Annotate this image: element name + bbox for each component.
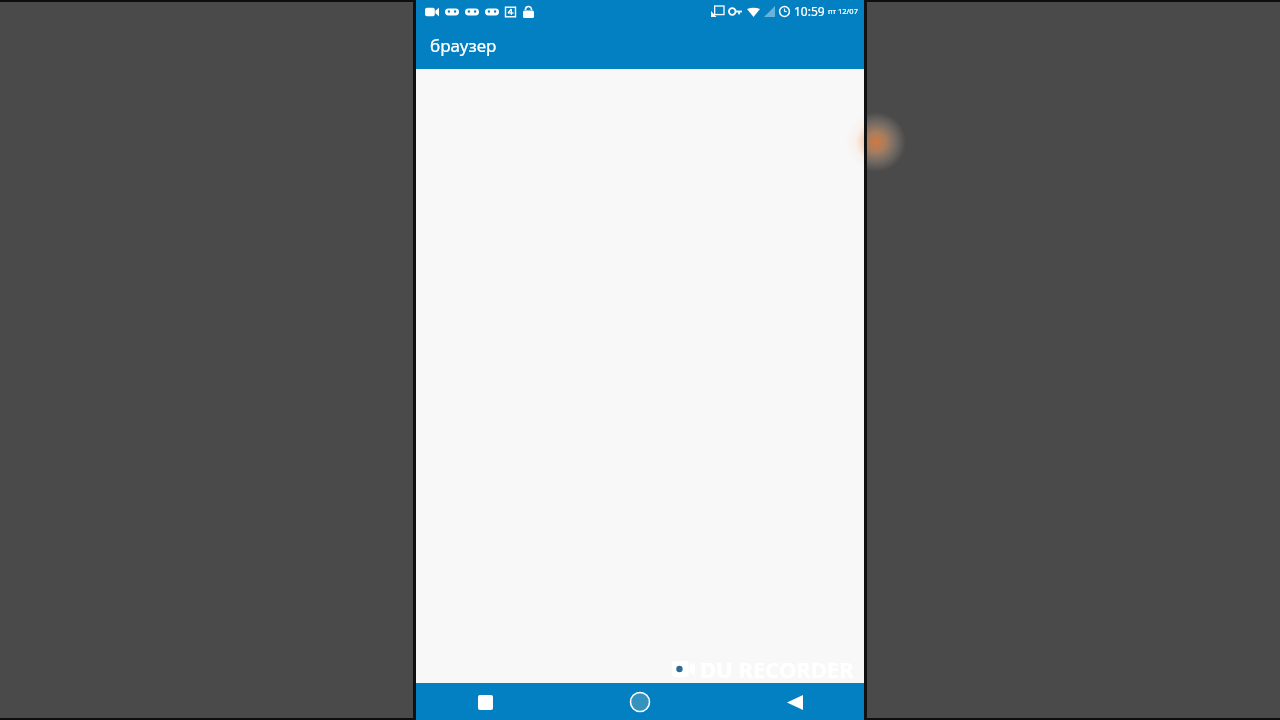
staticText: браузер [430, 34, 497, 57]
button[interactable]: Back [777, 684, 813, 720]
staticText: пт 12/07 [828, 6, 858, 16]
staticText: DU RECORDER [700, 654, 854, 684]
staticText: 10:59 [794, 3, 825, 19]
button[interactable]: Home [622, 684, 658, 720]
button[interactable]: браузер [416, 22, 864, 69]
button[interactable]: Recents [467, 684, 503, 720]
